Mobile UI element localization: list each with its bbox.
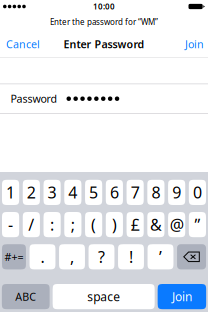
button[interactable]: @ [168,212,185,237]
staticText: 8 [151,182,160,203]
staticText: & [150,214,162,235]
button[interactable]: / [23,212,40,237]
button[interactable]: space [53,284,155,309]
staticText: , [70,246,74,267]
staticText: ! [129,246,133,267]
button[interactable]: ” [189,212,206,237]
staticText: Cancel [6,37,40,51]
staticText: Join [172,289,192,304]
button[interactable]: & [147,212,164,237]
staticText: . [40,246,44,267]
staticText: 10:00 [93,1,115,12]
button[interactable]: 4 [64,180,81,205]
staticText: ” [194,214,200,235]
staticText: 4 [68,182,77,203]
button[interactable]: £ [127,212,144,237]
staticText: : [50,214,54,235]
button[interactable]: 9 [168,180,185,205]
button[interactable]: 2 [23,180,40,205]
button[interactable]: #+= [2,244,26,269]
staticText: Enter Password [63,37,144,51]
staticText: £ [131,214,140,235]
button[interactable]: ( [85,212,102,237]
staticText: ? [98,246,105,267]
button[interactable]: ! [118,244,144,269]
button[interactable]: 6 [106,180,123,205]
staticText: - [8,214,13,235]
staticText: / [28,214,34,235]
button[interactable]: ; [64,212,81,237]
staticText: Password [10,92,57,106]
staticText: 0 [193,182,202,203]
staticText: @ [170,214,184,235]
button[interactable]: - [2,212,19,237]
button[interactable]: 5 [85,180,102,205]
staticText: 5 [89,182,98,203]
button[interactable]: ? [88,244,114,269]
button[interactable]: 1 [2,180,19,205]
button[interactable]: : [43,212,61,237]
staticText: ( [91,214,96,235]
staticText: ; [71,214,75,235]
staticText: 7 [131,182,140,203]
button[interactable]: ABC [2,284,50,309]
staticText: Join [185,37,204,51]
staticText: ’ [159,246,162,267]
button[interactable]: Cancel [0,33,46,55]
button[interactable]: 0 [189,180,206,205]
button[interactable]: 7 [127,180,144,205]
staticText: 3 [48,182,57,203]
staticText: space [87,289,120,304]
staticText: 2 [27,182,36,203]
staticText: 1 [6,182,15,203]
staticText: ) [112,214,117,235]
staticText: Enter the password for “WM” [50,17,158,27]
button[interactable]: . [30,244,55,269]
button[interactable]: , [59,244,85,269]
staticText: ABC [15,289,36,304]
button[interactable]: ’ [148,244,173,269]
button[interactable]: ) [106,212,123,237]
button[interactable]: Join [158,284,206,309]
button[interactable]: Delete [177,244,206,269]
staticText: 9 [172,182,181,203]
staticText: #+= [4,250,23,264]
button[interactable]: 8 [147,180,164,205]
staticText: 6 [110,182,119,203]
button[interactable]: Join [181,33,208,55]
button[interactable]: 3 [43,180,61,205]
